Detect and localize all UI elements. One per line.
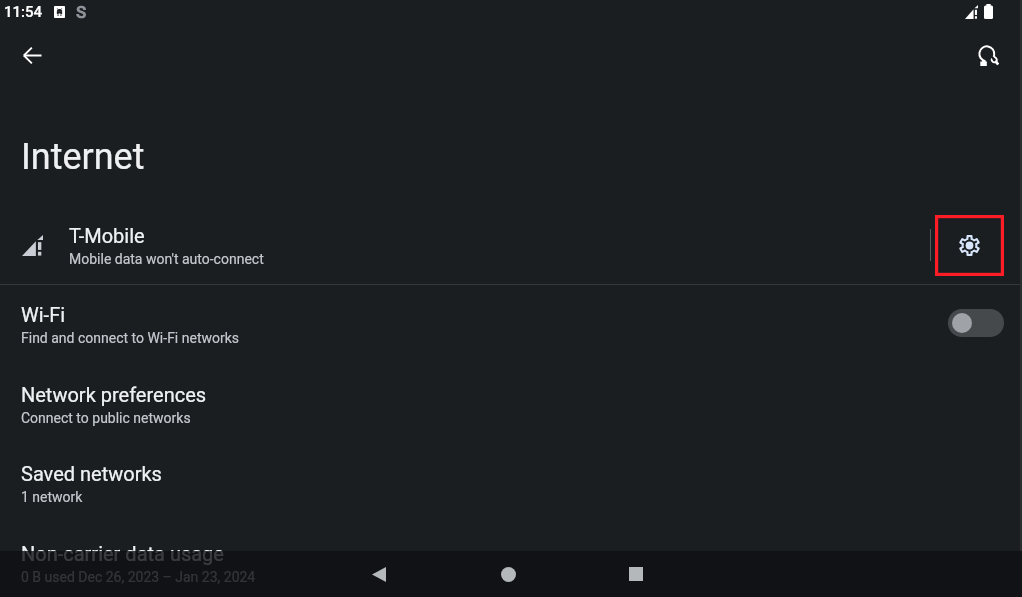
staticText: Internet xyxy=(21,136,145,178)
button[interactable]: Navigate up xyxy=(12,35,52,75)
staticText: Saved networks xyxy=(21,462,162,485)
staticText: 1 network xyxy=(21,489,83,505)
staticText: Wi-Fi xyxy=(21,303,66,326)
button[interactable]: Saved networks xyxy=(0,445,1022,525)
button[interactable]: Mobile network settings xyxy=(935,206,1004,284)
staticText: Non-carrier data usage xyxy=(21,542,224,565)
button[interactable]: Fix connectivity xyxy=(968,35,1008,75)
staticText: Find and connect to Wi-Fi networks xyxy=(21,330,240,346)
button[interactable]: T-Mobile xyxy=(0,206,1022,284)
staticText: T-Mobile xyxy=(69,224,145,247)
button[interactable]: Non-carrier data usage xyxy=(0,525,1022,597)
staticText: 0 B used Dec 26, 2023 – Jan 23, 2024 xyxy=(21,569,256,585)
staticText: 11:54 xyxy=(4,3,43,21)
staticText: S xyxy=(76,2,87,22)
button[interactable]: Recent apps xyxy=(571,551,701,597)
button[interactable]: Network preferences xyxy=(0,365,1022,445)
button[interactable]: Wi-Fi toggle xyxy=(948,309,1004,337)
staticText: Mobile data won't auto-connect xyxy=(69,251,264,267)
button[interactable]: Home xyxy=(443,551,573,597)
staticText: Connect to public networks xyxy=(21,410,191,426)
staticText: Network preferences xyxy=(21,383,207,406)
button[interactable]: Wi-Fi xyxy=(0,285,1022,365)
button[interactable]: Back xyxy=(314,551,444,597)
